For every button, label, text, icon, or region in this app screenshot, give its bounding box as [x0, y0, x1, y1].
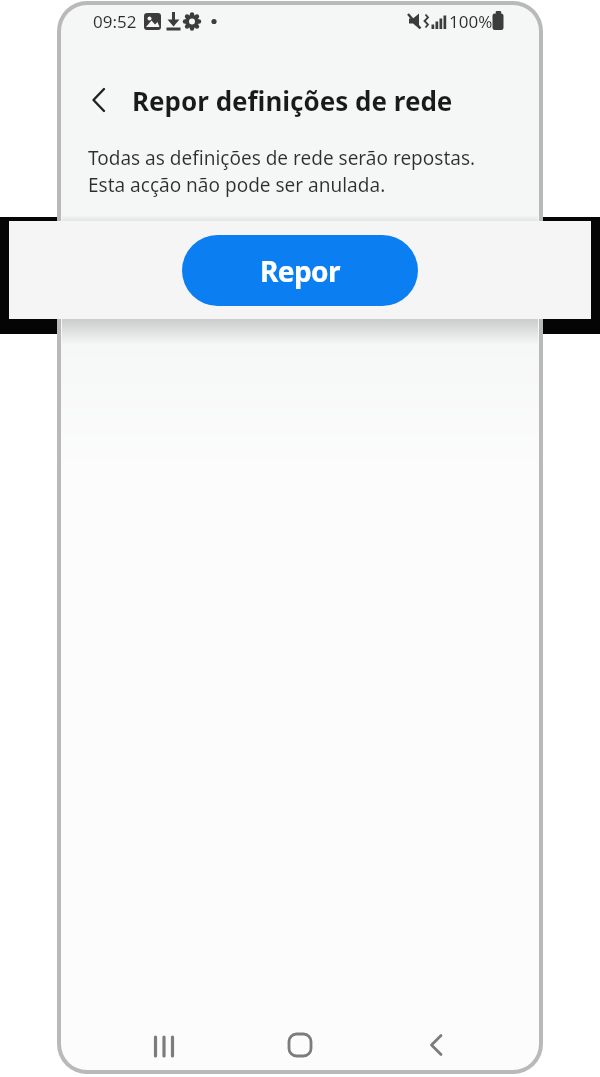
staticText: Repor: [260, 252, 340, 290]
button[interactable]: [140, 1026, 188, 1066]
button[interactable]: [88, 84, 120, 116]
staticText: Esta acção não pode ser anulada.: [88, 172, 386, 198]
staticText: Repor definições de rede: [132, 83, 453, 118]
staticText: 100%: [449, 10, 493, 33]
button[interactable]: Repor: [182, 235, 418, 306]
staticText: 09:52: [93, 10, 137, 33]
staticText: Todas as definições de rede serão repost…: [88, 145, 476, 171]
button[interactable]: [413, 1026, 461, 1066]
button[interactable]: [276, 1026, 324, 1066]
